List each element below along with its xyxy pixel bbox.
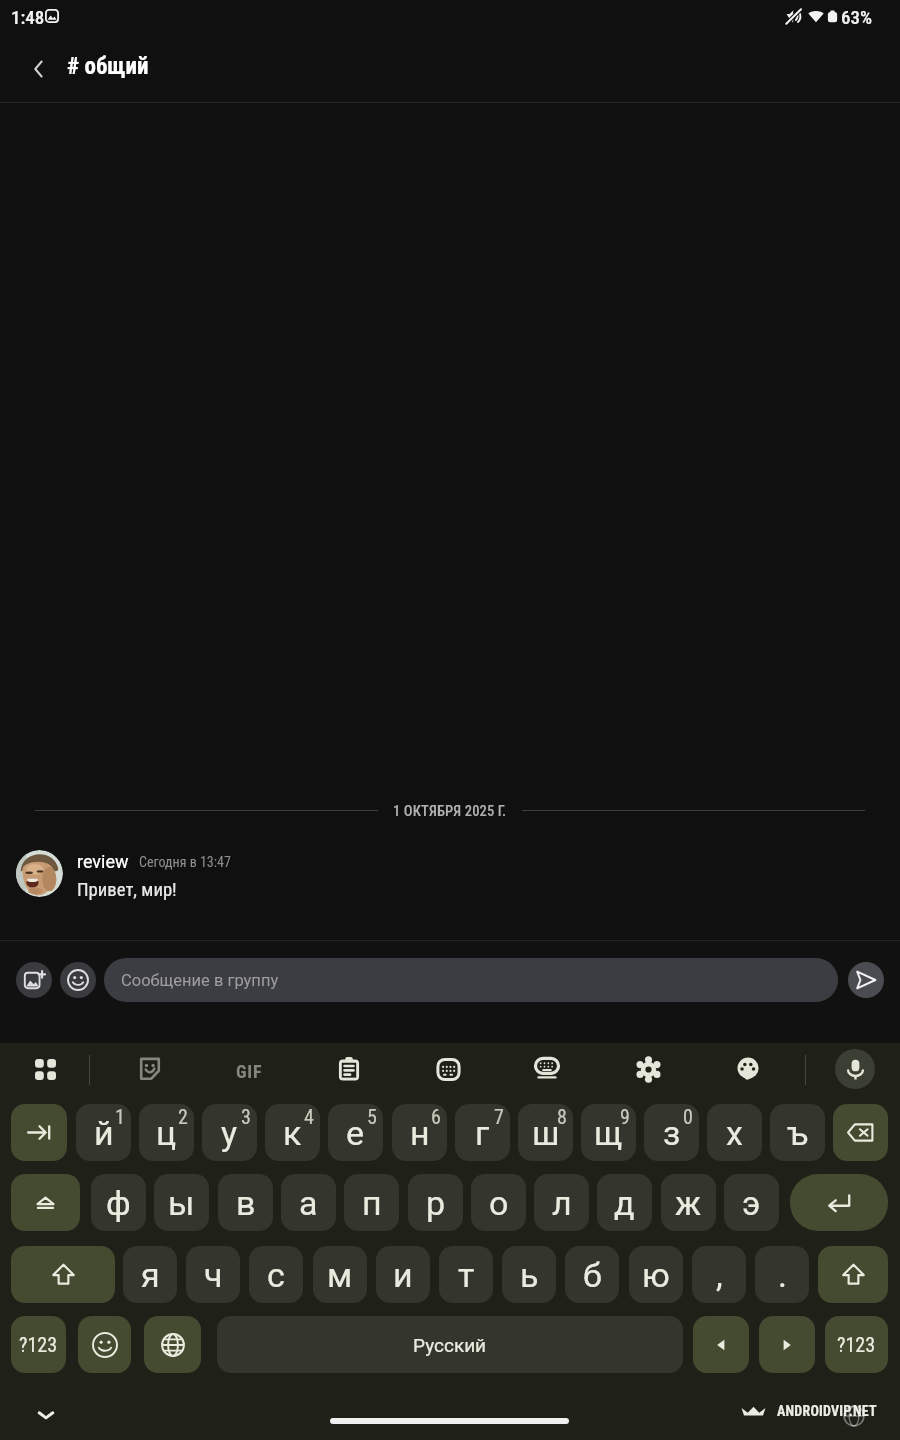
staticText: р — [426, 1183, 446, 1223]
staticText: ж — [675, 1183, 702, 1223]
button[interactable]: . — [755, 1246, 809, 1303]
button[interactable]: ф — [91, 1174, 146, 1231]
staticText: х — [726, 1113, 743, 1153]
staticText: 4 — [304, 1105, 314, 1128]
staticText: н — [410, 1113, 430, 1153]
button[interactable]: у — [202, 1104, 257, 1161]
button[interactable]: м — [313, 1246, 367, 1303]
staticText: ?123 — [19, 1333, 58, 1356]
button[interactable]: Emoji — [60, 962, 96, 998]
staticText: ?123 — [837, 1333, 876, 1356]
button[interactable]: Shift — [818, 1246, 888, 1303]
button[interactable]: Back — [16, 46, 62, 92]
staticText: в — [236, 1183, 256, 1223]
button[interactable]: д — [597, 1174, 652, 1231]
button[interactable]: о — [471, 1174, 526, 1231]
button[interactable]: Caps lock — [11, 1174, 80, 1231]
staticText: э — [742, 1183, 761, 1223]
button[interactable]: ж — [661, 1174, 716, 1231]
staticText: ч — [204, 1255, 223, 1295]
staticText: л — [552, 1183, 572, 1223]
button[interactable]: Русский — [217, 1316, 683, 1373]
button[interactable]: Shift — [11, 1246, 115, 1303]
button[interactable]: ц — [139, 1104, 194, 1161]
button[interactable]: Emoji — [78, 1316, 131, 1373]
button[interactable]: щ — [581, 1104, 636, 1161]
button[interactable]: GIF — [226, 1048, 272, 1094]
staticText: 9 — [620, 1105, 630, 1128]
button[interactable]: Tab — [11, 1104, 67, 1161]
staticText: г — [475, 1113, 490, 1153]
staticText: з — [663, 1113, 681, 1153]
button[interactable]: Apps — [22, 1046, 68, 1092]
button[interactable]: Text editing — [425, 1046, 471, 1092]
staticText: о — [489, 1183, 509, 1223]
button[interactable]: л — [534, 1174, 589, 1231]
staticText: ь — [520, 1255, 539, 1295]
staticText: щ — [594, 1113, 623, 1153]
staticText: е — [346, 1113, 365, 1153]
staticText: Русский — [413, 1334, 487, 1356]
staticText: Сегодня в 13:47 — [139, 854, 231, 870]
button[interactable]: Move left — [693, 1316, 749, 1373]
button[interactable]: з — [644, 1104, 699, 1161]
button[interactable]: Hide keyboard — [28, 1397, 64, 1433]
button[interactable]: , — [692, 1246, 746, 1303]
button[interactable]: Сообщение в группу — [104, 958, 838, 1002]
button[interactable]: к — [265, 1104, 320, 1161]
button[interactable]: х — [707, 1104, 762, 1161]
button[interactable]: Attach image — [16, 962, 52, 998]
button[interactable]: Backspace — [833, 1104, 888, 1161]
staticText: у — [221, 1113, 238, 1153]
button[interactable]: й — [76, 1104, 131, 1161]
button[interactable]: е — [328, 1104, 383, 1161]
button[interactable]: Enter — [790, 1174, 888, 1231]
staticText: 7 — [494, 1105, 504, 1128]
button[interactable]: ш — [518, 1104, 573, 1161]
button[interactable]: в — [218, 1174, 273, 1231]
staticText: 8 — [557, 1105, 567, 1128]
button[interactable]: ч — [186, 1246, 240, 1303]
button[interactable]: Theme — [725, 1046, 771, 1092]
staticText: й — [94, 1113, 114, 1153]
button[interactable]: т — [439, 1246, 493, 1303]
button[interactable]: Send — [848, 962, 884, 998]
staticText: Сообщение в группу — [121, 971, 279, 990]
button[interactable]: э — [724, 1174, 779, 1231]
staticText: ю — [642, 1255, 670, 1295]
button[interactable]: ю — [629, 1246, 683, 1303]
button[interactable]: Settings — [625, 1046, 671, 1092]
button[interactable]: р — [408, 1174, 463, 1231]
button[interactable]: б — [565, 1246, 619, 1303]
staticText: а — [299, 1183, 318, 1223]
button[interactable]: ъ — [770, 1104, 825, 1161]
button[interactable]: ?123 — [825, 1316, 888, 1373]
staticText: м — [327, 1255, 353, 1295]
button[interactable]: я — [123, 1246, 177, 1303]
button[interactable]: One handed mode — [524, 1046, 570, 1092]
button[interactable]: а — [281, 1174, 336, 1231]
staticText: 63% — [841, 6, 873, 28]
button[interactable]: н — [392, 1104, 447, 1161]
button[interactable]: п — [344, 1174, 399, 1231]
staticText: 2 — [178, 1105, 188, 1128]
button[interactable]: ?123 — [11, 1316, 66, 1373]
button[interactable]: Move right — [759, 1316, 815, 1373]
staticText: б — [583, 1255, 602, 1295]
button[interactable]: Voice input — [835, 1049, 875, 1089]
button[interactable]: Stickers — [127, 1046, 173, 1092]
button[interactable]: и — [376, 1246, 430, 1303]
button[interactable]: г — [455, 1104, 510, 1161]
staticText: к — [283, 1113, 302, 1153]
staticText: . — [778, 1255, 787, 1295]
button[interactable]: с — [249, 1246, 303, 1303]
button[interactable]: Change language — [144, 1316, 201, 1373]
staticText: ц — [156, 1113, 177, 1153]
button[interactable]: Clipboard — [326, 1046, 372, 1092]
staticText: ы — [168, 1183, 195, 1223]
staticText: с — [267, 1255, 285, 1295]
button[interactable]: ь — [502, 1246, 556, 1303]
staticText: ъ — [787, 1113, 809, 1153]
button[interactable]: Avatar of review — [16, 850, 63, 897]
button[interactable]: ы — [154, 1174, 209, 1231]
